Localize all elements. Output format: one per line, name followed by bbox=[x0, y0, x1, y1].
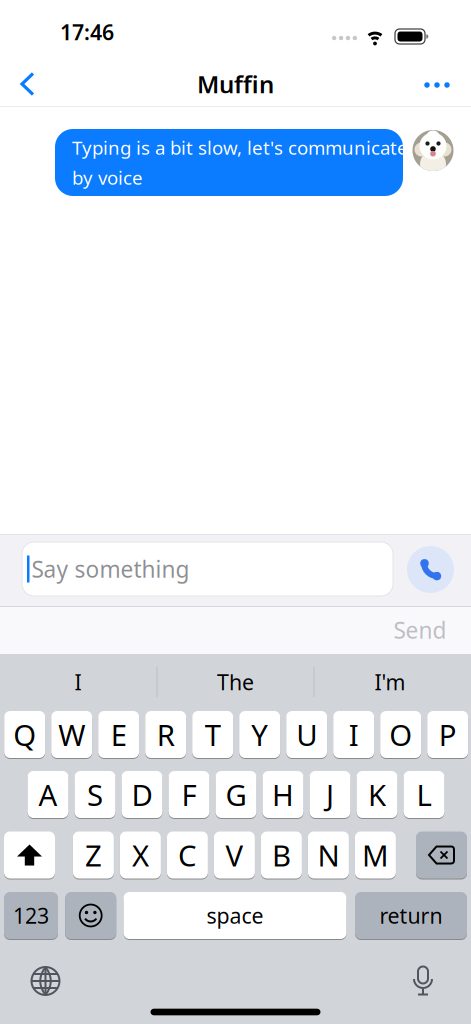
button[interactable]: T bbox=[192, 710, 233, 759]
button[interactable]: A bbox=[27, 770, 68, 819]
staticText: O bbox=[389, 715, 412, 754]
button[interactable]: W bbox=[51, 710, 92, 759]
button[interactable]: D bbox=[121, 770, 162, 819]
staticText: F bbox=[181, 775, 196, 814]
button[interactable]: Shift bbox=[4, 830, 55, 879]
staticText: B bbox=[272, 835, 291, 874]
button[interactable]: Send bbox=[385, 610, 455, 650]
staticText: return bbox=[379, 901, 442, 930]
button[interactable]: J bbox=[309, 770, 350, 819]
button[interactable]: 123 bbox=[4, 891, 58, 940]
button[interactable]: R bbox=[145, 710, 186, 759]
staticText: Q bbox=[13, 715, 36, 754]
staticText: N bbox=[317, 835, 339, 874]
staticText: R bbox=[157, 715, 175, 754]
button[interactable]: H bbox=[262, 770, 303, 819]
staticText: by voice bbox=[72, 165, 143, 190]
button[interactable]: Voice call bbox=[407, 546, 454, 593]
staticText: E bbox=[111, 715, 127, 754]
button[interactable]: space bbox=[123, 891, 346, 940]
staticText: I bbox=[349, 715, 359, 754]
button[interactable]: G bbox=[215, 770, 256, 819]
button[interactable]: Q bbox=[4, 710, 45, 759]
button[interactable]: More bbox=[415, 68, 459, 102]
staticText: Muffin bbox=[197, 68, 274, 100]
staticText: T bbox=[205, 715, 221, 754]
button[interactable]: K bbox=[356, 770, 397, 819]
button[interactable]: I'm bbox=[320, 662, 460, 702]
staticText: The bbox=[217, 668, 254, 696]
button[interactable]: E bbox=[98, 710, 139, 759]
button[interactable]: return bbox=[355, 891, 467, 940]
staticText: U bbox=[296, 715, 317, 754]
button[interactable]: N bbox=[308, 830, 349, 879]
button[interactable]: C bbox=[167, 830, 208, 879]
button[interactable]: M bbox=[355, 830, 396, 879]
button[interactable]: The bbox=[165, 662, 305, 702]
button[interactable]: Emoji bbox=[65, 891, 116, 940]
staticText: Typing is a bit slow, let's communicate bbox=[72, 135, 408, 160]
staticText: space bbox=[206, 901, 263, 930]
staticText: I'm bbox=[374, 668, 405, 696]
button[interactable]: Delete bbox=[416, 830, 467, 879]
staticText: 123 bbox=[13, 901, 49, 930]
staticText: L bbox=[416, 775, 431, 814]
button[interactable]: Next keyboard bbox=[23, 959, 67, 1003]
staticText: C bbox=[178, 835, 197, 874]
staticText: J bbox=[326, 775, 334, 814]
staticText: P bbox=[439, 715, 457, 754]
button[interactable]: I bbox=[8, 662, 148, 702]
staticText: 17:46 bbox=[60, 18, 114, 46]
button[interactable]: Back bbox=[11, 67, 45, 101]
staticText: Say something bbox=[31, 554, 189, 584]
staticText: V bbox=[225, 835, 243, 874]
button[interactable]: P bbox=[427, 710, 468, 759]
button[interactable]: O bbox=[380, 710, 421, 759]
button[interactable]: Z bbox=[73, 830, 114, 879]
button[interactable]: S bbox=[74, 770, 115, 819]
staticText: G bbox=[225, 775, 246, 814]
staticText: Y bbox=[251, 715, 268, 754]
button[interactable]: B bbox=[261, 830, 302, 879]
staticText: I bbox=[74, 668, 81, 696]
staticText: X bbox=[132, 835, 149, 874]
staticText: A bbox=[38, 775, 57, 814]
staticText: S bbox=[87, 775, 103, 814]
staticText: H bbox=[272, 775, 294, 814]
staticText: K bbox=[368, 775, 386, 814]
staticText: W bbox=[58, 715, 85, 754]
button[interactable]: Y bbox=[239, 710, 280, 759]
staticText: D bbox=[131, 775, 152, 814]
button[interactable]: V bbox=[214, 830, 255, 879]
button[interactable]: X bbox=[120, 830, 161, 879]
staticText: Send bbox=[393, 615, 446, 645]
button[interactable]: L bbox=[403, 770, 444, 819]
staticText: Z bbox=[85, 835, 102, 874]
button[interactable]: Say something bbox=[22, 542, 393, 596]
button[interactable]: F bbox=[168, 770, 209, 819]
button[interactable]: U bbox=[286, 710, 327, 759]
button[interactable]: I bbox=[333, 710, 374, 759]
staticText: M bbox=[362, 835, 389, 874]
button[interactable]: Dictate bbox=[401, 959, 445, 1003]
